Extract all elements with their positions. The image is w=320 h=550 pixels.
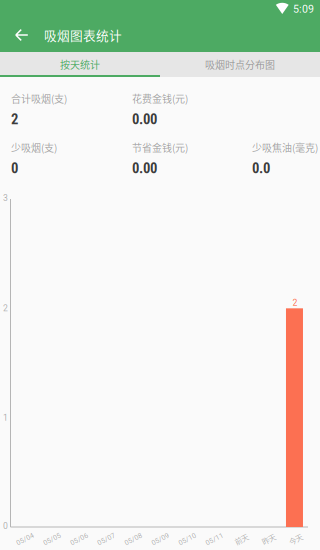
button[interactable]: 吸烟时点分布图: [160, 52, 320, 77]
staticText: 2: [3, 303, 8, 313]
staticText: 2: [11, 111, 18, 128]
staticText: 花费金钱(元): [132, 91, 188, 106]
staticText: 少吸焦油(毫克): [252, 140, 318, 155]
staticText: 节省金钱(元): [132, 140, 188, 155]
staticText: 05/09: [151, 535, 170, 543]
staticText: 05/08: [124, 535, 143, 543]
staticText: 05/07: [97, 535, 116, 543]
staticText: 2: [292, 298, 297, 308]
staticText: 5:09: [293, 3, 314, 15]
staticText: 按天统计: [60, 57, 100, 72]
staticText: 05/05: [43, 535, 62, 543]
staticText: 05/10: [178, 535, 197, 543]
staticText: 前天: [234, 534, 248, 544]
staticText: 吸烟图表统计: [44, 26, 122, 44]
staticText: 1: [3, 413, 8, 423]
staticText: 05/11: [205, 535, 224, 543]
staticText: 昨天: [261, 534, 275, 544]
staticText: 0: [11, 160, 18, 177]
staticText: 吸烟时点分布图: [205, 57, 275, 72]
staticText: 今天: [288, 534, 302, 544]
staticText: 少吸烟(支): [11, 140, 57, 155]
button[interactable]: Back: [6, 18, 38, 52]
staticText: 合计吸烟(支): [11, 91, 67, 106]
staticText: 0.0: [252, 160, 270, 177]
staticText: 3: [3, 193, 8, 203]
staticText: 0.00: [132, 111, 157, 128]
staticText: 0: [3, 521, 8, 531]
staticText: 05/06: [70, 535, 89, 543]
button[interactable]: 按天统计: [0, 52, 160, 77]
staticText: 0.00: [132, 160, 157, 177]
staticText: 05/04: [15, 535, 34, 543]
